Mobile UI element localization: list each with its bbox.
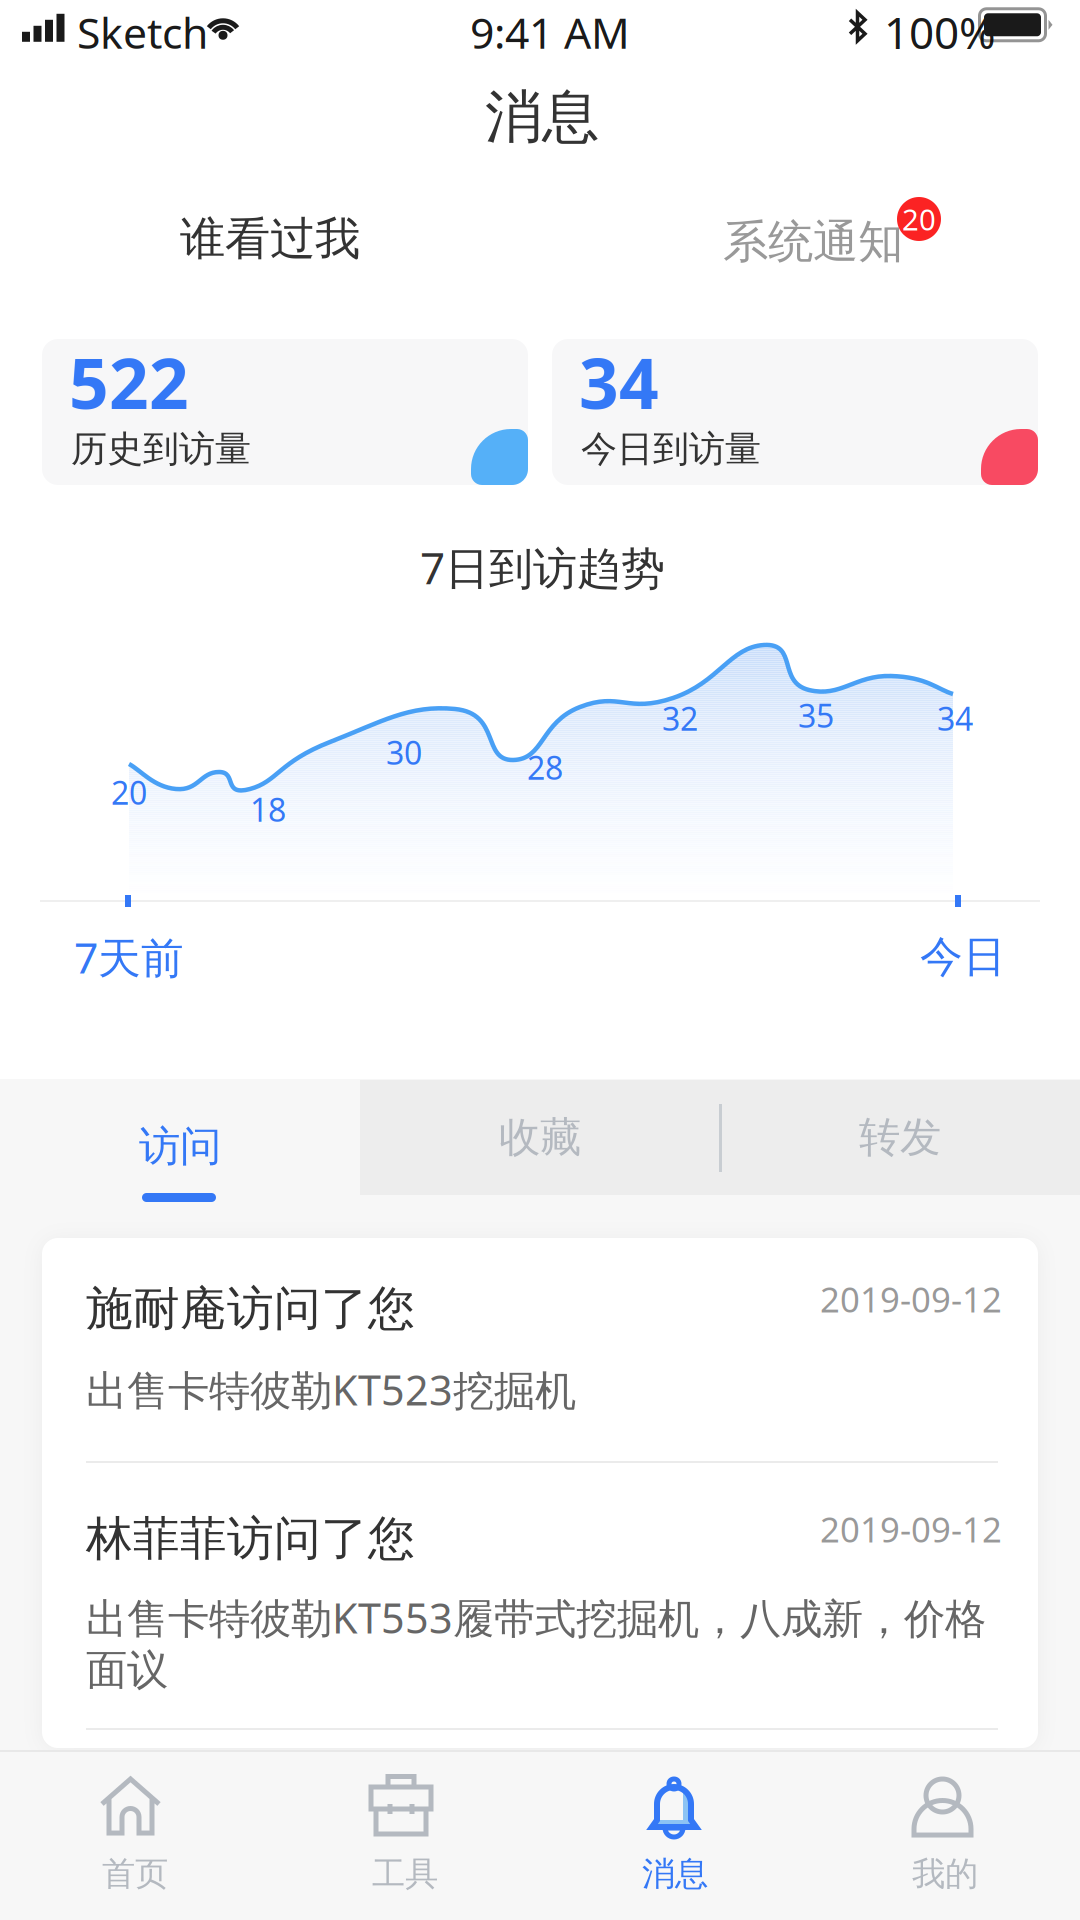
staticText: Sketch — [77, 4, 208, 60]
button[interactable]: 林菲菲访问了您 — [42, 1452, 1038, 1712]
button[interactable]: 收藏 — [360, 1080, 720, 1195]
staticText: 今日 — [920, 931, 1006, 983]
button[interactable]: 今日 — [916, 932, 1006, 982]
staticText: 32 — [662, 697, 698, 739]
button[interactable]: 首页 — [0, 1750, 270, 1920]
staticText: 今日到访量 — [581, 427, 761, 471]
button[interactable]: 34 — [552, 339, 1038, 485]
staticText: 出售卡特彼勒KT523挖掘机 — [86, 1362, 576, 1417]
staticText: 出售卡特彼勒KT553履带式挖掘机，八成新，价格面议 — [86, 1590, 986, 1696]
staticText: 34 — [937, 697, 973, 739]
staticText: 谁看过我 — [180, 211, 360, 267]
staticText: 访问 — [139, 1121, 221, 1172]
button[interactable]: 7天前 — [74, 932, 194, 982]
button[interactable]: 转发 — [720, 1080, 1080, 1195]
staticText: 35 — [798, 694, 834, 736]
staticText: 522 — [69, 336, 189, 428]
staticText: 2019-09-12 — [820, 1276, 1002, 1322]
staticText: 消息 — [485, 82, 599, 152]
staticText: 100% — [884, 3, 996, 61]
staticText: 34 — [579, 336, 659, 428]
staticText: 首页 — [102, 1853, 168, 1894]
button[interactable]: 消息 — [540, 1750, 810, 1920]
staticText: 20 — [902, 199, 936, 238]
staticText: 转发 — [859, 1112, 941, 1163]
button[interactable]: 工具 — [270, 1750, 540, 1920]
staticText: 消息 — [642, 1853, 708, 1894]
button[interactable]: 谁看过我 — [170, 210, 370, 268]
staticText: 林菲菲访问了您 — [86, 1510, 415, 1567]
staticText: 2019-09-12 — [820, 1506, 1002, 1552]
staticText: 9:41 AM — [470, 4, 630, 60]
button[interactable]: 施耐庵访问了您 — [42, 1238, 1038, 1438]
staticText: 18 — [250, 788, 286, 830]
staticText: 20 — [111, 771, 147, 813]
staticText: 7天前 — [74, 929, 184, 985]
button[interactable]: 522 — [42, 339, 528, 485]
button[interactable]: 我的 — [810, 1750, 1080, 1920]
staticText: 28 — [527, 746, 563, 788]
staticText: 工具 — [372, 1853, 438, 1894]
staticText: 收藏 — [499, 1112, 581, 1163]
staticText: 30 — [386, 731, 422, 773]
button[interactable]: 访问 — [0, 1080, 360, 1205]
staticText: 施耐庵访问了您 — [86, 1280, 415, 1337]
staticText: 系统通知 — [723, 214, 903, 270]
staticText: 7日到访趋势 — [420, 538, 665, 596]
button[interactable]: 系统通知 — [723, 210, 983, 268]
staticText: 我的 — [912, 1853, 978, 1894]
staticText: 历史到访量 — [71, 427, 251, 471]
